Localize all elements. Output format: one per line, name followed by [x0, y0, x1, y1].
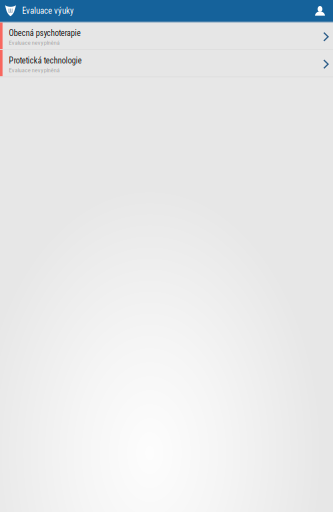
button[interactable]: Obecná psychoterapie [0, 22, 333, 49]
staticText: Protetická technologie [9, 56, 82, 65]
staticText: Obecná psychoterapie [9, 28, 81, 38]
button[interactable]: Account [307, 2, 333, 20]
staticText: Evaluace výuky [22, 6, 74, 16]
staticText: Evaluace nevyplněná [9, 66, 60, 74]
button[interactable]: Protetická technologie [0, 50, 333, 76]
staticText: Evaluace nevyplněná [9, 39, 60, 46]
